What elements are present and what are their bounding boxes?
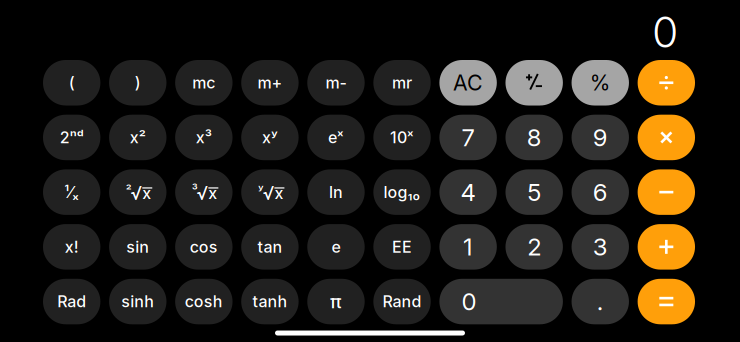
staticText: 2ⁿᵈ <box>60 128 84 147</box>
staticText: x! <box>65 237 79 257</box>
button[interactable]: x² <box>109 115 166 160</box>
button[interactable]: Subtract <box>638 169 695 215</box>
button[interactable]: mc <box>175 60 232 105</box>
staticText: EE <box>392 237 412 257</box>
button[interactable]: Add <box>638 224 695 270</box>
button[interactable]: cos <box>175 224 232 270</box>
button[interactable]: Multiply <box>638 115 695 160</box>
button[interactable]: AC <box>439 60 497 105</box>
staticText: Rad <box>57 292 86 311</box>
staticText: 2 <box>527 232 541 261</box>
staticText: 0 <box>461 287 476 316</box>
button[interactable]: 4 <box>439 169 497 215</box>
staticText: m+ <box>257 73 282 92</box>
button[interactable]: Rand <box>373 279 431 324</box>
staticText: ² <box>126 183 132 199</box>
staticText: 1 <box>463 232 473 261</box>
button[interactable]: sinh <box>109 279 166 324</box>
staticText: 7 <box>462 123 475 152</box>
button[interactable]: sin <box>109 224 166 270</box>
staticText: 8 <box>527 123 542 152</box>
button[interactable]: ) <box>109 60 166 105</box>
staticText: xʸ <box>262 128 278 147</box>
button[interactable]: ln <box>307 169 365 215</box>
staticText: x³ <box>196 128 212 147</box>
button[interactable]: mr <box>373 60 431 105</box>
button[interactable]: Rad <box>43 279 100 324</box>
staticText: ) <box>135 73 141 92</box>
button[interactable]: Toggle sign <box>505 60 563 105</box>
staticText: ʸ <box>258 183 264 199</box>
button[interactable]: tanh <box>241 279 299 324</box>
staticText: 3 <box>593 232 608 261</box>
staticText: % <box>590 70 611 96</box>
staticText: π <box>330 290 342 313</box>
button[interactable]: ³ <box>175 169 232 215</box>
staticText: eˣ <box>328 128 344 147</box>
button[interactable]: EE <box>373 224 431 270</box>
staticText: 10ˣ <box>390 128 414 147</box>
button[interactable]: ² <box>109 169 166 215</box>
staticText: cos <box>190 237 218 257</box>
staticText: sinh <box>121 292 154 311</box>
staticText: 9 <box>593 123 608 152</box>
button[interactable]: ( <box>43 60 100 105</box>
button[interactable]: m+ <box>241 60 299 105</box>
staticText: ³ <box>192 183 198 199</box>
button[interactable]: 6 <box>572 169 629 215</box>
button[interactable]: 2ⁿᵈ <box>43 115 100 160</box>
staticText: mr <box>392 73 412 92</box>
staticText: x <box>208 183 217 203</box>
staticText: m- <box>325 73 346 92</box>
staticText: 6 <box>593 178 608 207</box>
staticText: ln <box>329 182 343 202</box>
button[interactable]: 2 <box>505 224 563 270</box>
button[interactable]: 3 <box>572 224 629 270</box>
staticText: ¹⁄ₓ <box>64 182 79 202</box>
button[interactable]: eˣ <box>307 115 365 160</box>
button[interactable]: x³ <box>175 115 232 160</box>
staticText: . <box>597 287 604 316</box>
staticText: 4 <box>461 178 476 207</box>
button[interactable]: 5 <box>505 169 563 215</box>
button[interactable]: log₁₀ <box>373 169 431 215</box>
staticText: x² <box>130 128 146 147</box>
staticText: tanh <box>252 292 287 311</box>
button[interactable]: cosh <box>175 279 232 324</box>
button[interactable]: x! <box>43 224 100 270</box>
staticText: tan <box>257 237 282 257</box>
staticText: 0 <box>652 6 678 58</box>
button[interactable]: Divide <box>638 60 695 105</box>
button[interactable]: 10ˣ <box>373 115 431 160</box>
staticText: Rand <box>382 292 421 311</box>
button[interactable]: . <box>572 279 629 324</box>
button[interactable]: 7 <box>439 115 497 160</box>
staticText: √ <box>196 181 208 204</box>
button[interactable]: % <box>572 60 629 105</box>
button[interactable]: Equals <box>638 279 695 324</box>
staticText: √ <box>262 181 274 204</box>
staticText: e <box>331 237 340 257</box>
button[interactable]: 1 <box>439 224 497 270</box>
button[interactable]: π <box>307 279 365 324</box>
staticText: x <box>142 183 151 203</box>
button[interactable]: ¹⁄ₓ <box>43 169 100 215</box>
button[interactable]: 9 <box>572 115 629 160</box>
button[interactable]: xʸ <box>241 115 299 160</box>
staticText: AC <box>453 70 483 96</box>
button[interactable]: 0 <box>439 279 563 324</box>
button[interactable]: m- <box>307 60 365 105</box>
staticText: √ <box>130 181 142 204</box>
staticText: log₁₀ <box>383 182 420 202</box>
button[interactable]: tan <box>241 224 299 270</box>
staticText: x <box>274 183 283 203</box>
staticText: 5 <box>527 178 541 207</box>
staticText: ( <box>69 73 75 92</box>
staticText: sin <box>126 237 149 257</box>
button[interactable]: e <box>307 224 365 270</box>
button[interactable]: ʸ <box>241 169 299 215</box>
staticText: cosh <box>185 292 223 311</box>
staticText: mc <box>192 73 215 92</box>
button[interactable]: 8 <box>505 115 563 160</box>
